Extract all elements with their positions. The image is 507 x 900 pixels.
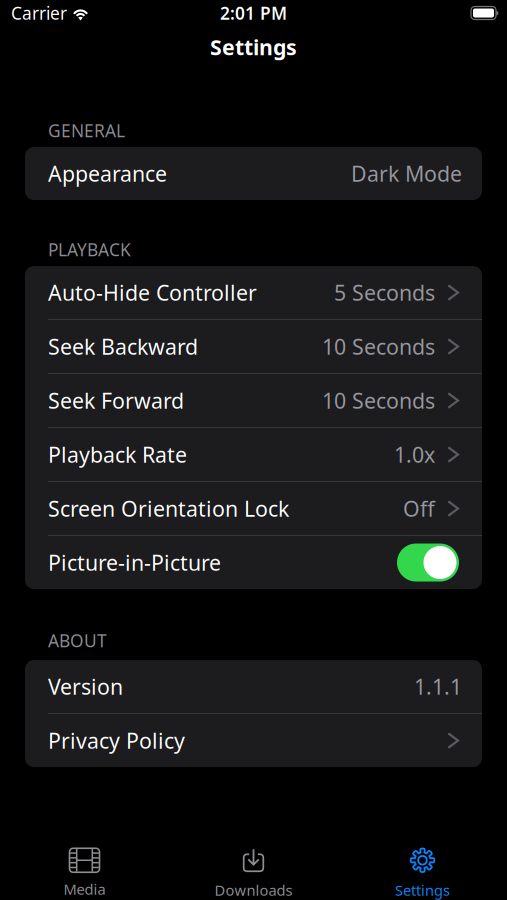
button[interactable]: Privacy Policy <box>25 714 482 767</box>
staticText: Settings <box>210 33 297 61</box>
staticText: 10 Seconds <box>322 332 435 361</box>
staticText: Seek Backward <box>48 332 198 361</box>
staticText: Appearance <box>48 159 167 188</box>
button[interactable]: Auto-Hide Controller <box>25 266 482 319</box>
button[interactable]: Seek Backward <box>25 320 482 373</box>
staticText: 10 Seconds <box>322 386 435 415</box>
staticText: Off <box>403 494 435 523</box>
staticText: Playback Rate <box>48 440 187 469</box>
staticText: Version <box>48 672 123 701</box>
button[interactable]: Media <box>0 847 169 900</box>
button[interactable]: Appearance <box>25 147 482 200</box>
staticText: Screen Orientation Lock <box>48 494 289 523</box>
staticText: 1.1.1 <box>414 672 462 701</box>
staticText: Carrier <box>11 1 67 24</box>
button[interactable]: Version <box>25 660 482 713</box>
button[interactable]: Picture-in-Picture <box>25 536 482 589</box>
button[interactable]: Settings <box>338 847 507 900</box>
staticText: 1.0x <box>394 440 435 469</box>
staticText: Seek Forward <box>48 386 184 415</box>
staticText: Privacy Policy <box>48 726 185 755</box>
staticText: PLAYBACK <box>48 238 131 261</box>
staticText: GENERAL <box>48 119 125 142</box>
button[interactable]: Screen Orientation Lock <box>25 482 482 535</box>
button[interactable]: Playback Rate <box>25 428 482 481</box>
button[interactable]: Downloads <box>169 847 338 900</box>
staticText: Auto-Hide Controller <box>48 278 257 307</box>
staticText: 5 Seconds <box>334 278 435 307</box>
staticText: Picture-in-Picture <box>48 548 221 577</box>
staticText: Downloads <box>214 880 292 900</box>
staticText: Settings <box>395 880 450 900</box>
staticText: Dark Mode <box>351 159 462 188</box>
staticText: ABOUT <box>48 629 107 652</box>
button[interactable]: Seek Forward <box>25 374 482 427</box>
staticText: Media <box>63 879 105 899</box>
staticText: 2:01 PM <box>220 1 287 24</box>
